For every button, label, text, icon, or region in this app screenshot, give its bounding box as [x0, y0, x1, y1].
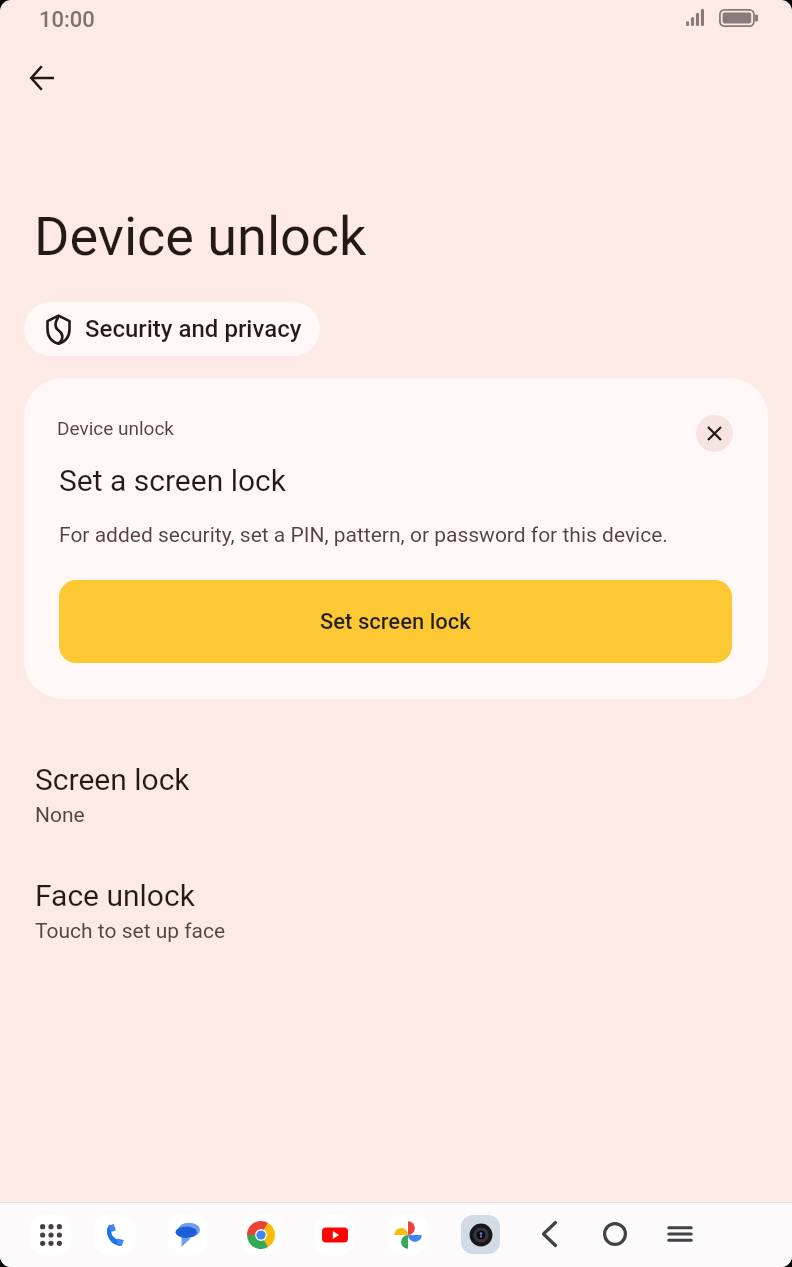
button[interactable]: Screen lock: [0, 740, 792, 832]
staticText: Device unlock: [57, 417, 174, 439]
staticText: Device unlock: [34, 205, 367, 268]
button[interactable]: Back: [14, 50, 69, 105]
button[interactable]: Messages: [168, 1215, 207, 1254]
button[interactable]: Phone: [95, 1215, 134, 1254]
button[interactable]: Apps: [31, 1215, 70, 1254]
button[interactable]: Recents: [656, 1210, 704, 1258]
button[interactable]: Face unlock: [0, 856, 792, 948]
button[interactable]: Dismiss: [696, 415, 733, 452]
staticText: None: [35, 803, 85, 828]
button[interactable]: Photos: [388, 1215, 427, 1254]
staticText: Security and privacy: [85, 315, 302, 343]
button[interactable]: Camera: [461, 1215, 500, 1254]
staticText: 10:00: [39, 7, 95, 33]
button[interactable]: Set screen lock: [59, 580, 732, 663]
staticText: For added security, set a PIN, pattern, …: [59, 523, 668, 548]
staticText: Touch to set up face: [35, 919, 226, 944]
staticText: Face unlock: [35, 878, 195, 913]
button[interactable]: Security and privacy: [24, 302, 320, 356]
button[interactable]: Home: [591, 1210, 639, 1258]
button[interactable]: YouTube: [315, 1215, 354, 1254]
button[interactable]: Back: [525, 1210, 573, 1258]
staticText: Set screen lock: [320, 609, 471, 635]
staticText: Screen lock: [35, 762, 190, 797]
button[interactable]: Chrome: [241, 1215, 280, 1254]
staticText: Set a screen lock: [59, 463, 286, 498]
